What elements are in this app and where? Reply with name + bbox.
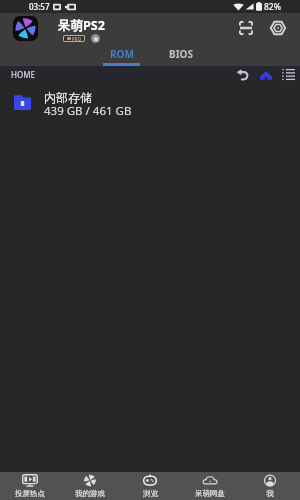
staticText: 投屏热点 [15, 489, 45, 498]
staticText: 439 GB / 461 GB [44, 103, 132, 119]
button[interactable]: 我的游戏 [60, 472, 120, 500]
button[interactable]: 我 [240, 472, 300, 500]
staticText: ROM [110, 47, 134, 61]
button[interactable]: App logo [13, 16, 38, 41]
staticText: 我 [266, 489, 274, 498]
staticText: 内部存储 [44, 90, 92, 105]
staticText: PRO [72, 36, 82, 41]
button[interactable]: 呆萌网盘 [180, 472, 240, 500]
button[interactable]: View mode [280, 66, 297, 83]
button[interactable]: ROM [103, 43, 140, 66]
staticText: BIOS [169, 47, 193, 61]
button[interactable]: Home [257, 66, 274, 83]
button[interactable]: Back [234, 66, 251, 83]
staticText: 我的游戏 [75, 489, 105, 498]
button[interactable]: 投屏热点 [0, 472, 60, 500]
button[interactable]: Settings [264, 14, 292, 42]
button[interactable]: HOME [11, 69, 36, 80]
button[interactable]: Rating [91, 34, 100, 43]
staticText: 03:57 [29, 1, 50, 12]
staticText: 82% [264, 1, 281, 13]
button[interactable]: PRO [64, 36, 84, 41]
button[interactable]: 浏览 [120, 472, 180, 500]
staticText: 浏览 [143, 489, 158, 498]
button[interactable]: Scan [232, 14, 260, 42]
staticText: 呆萌网盘 [195, 489, 225, 498]
staticText: 呆萌PS2 [58, 17, 105, 34]
button[interactable]: BIOS [162, 43, 200, 66]
staticText: HOME [11, 69, 36, 80]
button[interactable]: 内部存储 [0, 83, 300, 121]
